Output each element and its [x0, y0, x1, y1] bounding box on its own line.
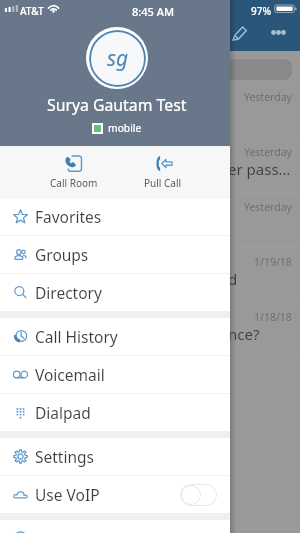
staticText: Call Room [50, 176, 98, 190]
staticText: AT&T [20, 4, 44, 18]
button[interactable]: Settings [0, 438, 230, 475]
button[interactable]: 1/18/18 [0, 303, 300, 358]
button[interactable]: Use VoIP toggle [180, 484, 217, 506]
button[interactable]: Pull Call [118, 148, 208, 197]
staticText: Surya Gautam Test [47, 94, 187, 116]
staticText: Yesterday [244, 200, 292, 214]
button[interactable]: Favorites [0, 198, 230, 235]
staticText: Directory [35, 282, 102, 303]
button[interactable]: Use VoIP [0, 476, 230, 513]
staticText: Dialpad [35, 402, 91, 423]
button[interactable]: Directory [0, 274, 230, 311]
staticText: mobile [108, 121, 142, 135]
button[interactable]: Call History [0, 318, 230, 355]
staticText: 1/19/18 [254, 255, 292, 269]
button[interactable]: Profile avatar [86, 27, 148, 89]
button[interactable]: Search [222, 59, 292, 80]
staticText: d [228, 269, 238, 289]
staticText: Yesterday [244, 145, 292, 159]
staticText: Call History [35, 326, 118, 347]
staticText: Settings [35, 446, 94, 467]
staticText: 97% [251, 4, 271, 18]
button[interactable]: About [0, 520, 230, 533]
staticText: Groups [35, 244, 89, 265]
staticText: Pull Call [144, 176, 182, 190]
button[interactable]: More options [268, 26, 290, 39]
button[interactable]: Voicemail [0, 356, 230, 393]
staticText: er pass… [228, 159, 291, 179]
button[interactable]: Call Room [29, 148, 118, 197]
button[interactable]: Yesterday [0, 83, 300, 138]
button[interactable]: Yesterday [0, 193, 300, 248]
button[interactable]: Dialpad [0, 394, 230, 431]
staticText: 1/18/18 [254, 310, 292, 324]
staticText: sg [107, 44, 129, 73]
button[interactable]: Compose message [231, 25, 248, 42]
staticText: 8:45 AM [132, 4, 175, 19]
staticText: Voicemail [35, 364, 105, 385]
button[interactable]: Groups [0, 236, 230, 273]
staticText: Use VoIP [35, 484, 100, 505]
staticText: nce? [228, 324, 260, 344]
staticText: Favorites [35, 206, 102, 227]
button[interactable]: Yesterday [0, 138, 300, 193]
staticText: Yesterday [244, 90, 292, 104]
button[interactable]: 1/19/18 [0, 248, 300, 303]
